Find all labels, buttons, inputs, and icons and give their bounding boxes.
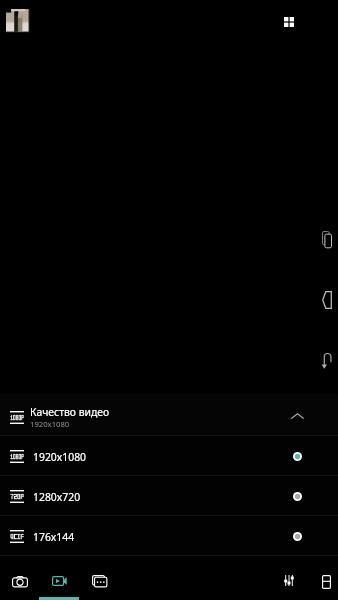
button[interactable]: Photo [7, 568, 33, 594]
button[interactable]: Качество видео [0, 394, 338, 435]
button[interactable]: Storage [314, 570, 338, 594]
button[interactable]: Aspect ratio [278, 11, 300, 33]
button[interactable]: More modes [86, 568, 112, 594]
button[interactable]: Settings [276, 568, 301, 593]
button[interactable]: Return [317, 349, 337, 371]
button[interactable]: Video [46, 568, 72, 594]
staticText: 1280x720 [33, 490, 81, 504]
button[interactable]: 1280x720 [0, 476, 338, 515]
button[interactable]: Collapse [289, 409, 306, 423]
staticText: Качество видео [30, 405, 110, 419]
button[interactable]: Back [317, 289, 337, 311]
staticText: 1920x1080 [33, 450, 87, 464]
button[interactable]: 176x144 [0, 516, 338, 555]
button[interactable]: Gallery [6, 9, 30, 33]
staticText: 1920x1080 [30, 419, 70, 429]
button[interactable]: Switch window [317, 228, 337, 250]
staticText: 176x144 [33, 530, 75, 544]
button[interactable]: 1920x1080 [0, 436, 338, 475]
